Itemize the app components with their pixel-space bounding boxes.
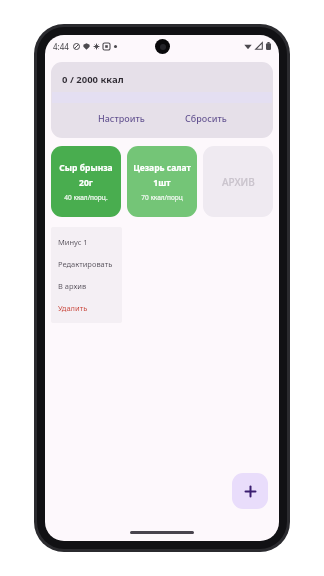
staticText: Редактировать [58,259,113,269]
staticText: 0 / 2000 ккал [62,73,124,86]
staticText: АРХИВ [222,175,255,189]
button[interactable]: Редактировать [51,253,122,275]
staticText: Цезарь салат [133,162,191,174]
staticText: 70 ккал/порц [141,193,183,202]
button[interactable]: Сбросить [175,107,237,129]
staticText: 20г [79,177,93,189]
button[interactable]: Настроить [88,107,155,129]
button[interactable]: Удалить [51,297,122,319]
staticText: 4:44 [53,41,69,52]
button[interactable]: В архив [51,275,122,297]
staticText: 1шт [153,177,171,189]
staticText: Настроить [98,112,145,124]
staticText: Сыр брынза [59,162,113,174]
staticText: Удалить [58,303,88,313]
button[interactable]: Add product [232,473,268,509]
button[interactable]: Цезарь салат [127,146,197,217]
button[interactable]: Сыр брынза [51,146,121,217]
staticText: 40 ккал/порц. [64,193,108,202]
staticText: Минус 1 [58,237,88,247]
button[interactable]: Минус 1 [51,231,122,253]
button[interactable]: АРХИВ [203,146,273,217]
staticText: В архив [58,281,87,291]
staticText: Сбросить [185,112,227,124]
